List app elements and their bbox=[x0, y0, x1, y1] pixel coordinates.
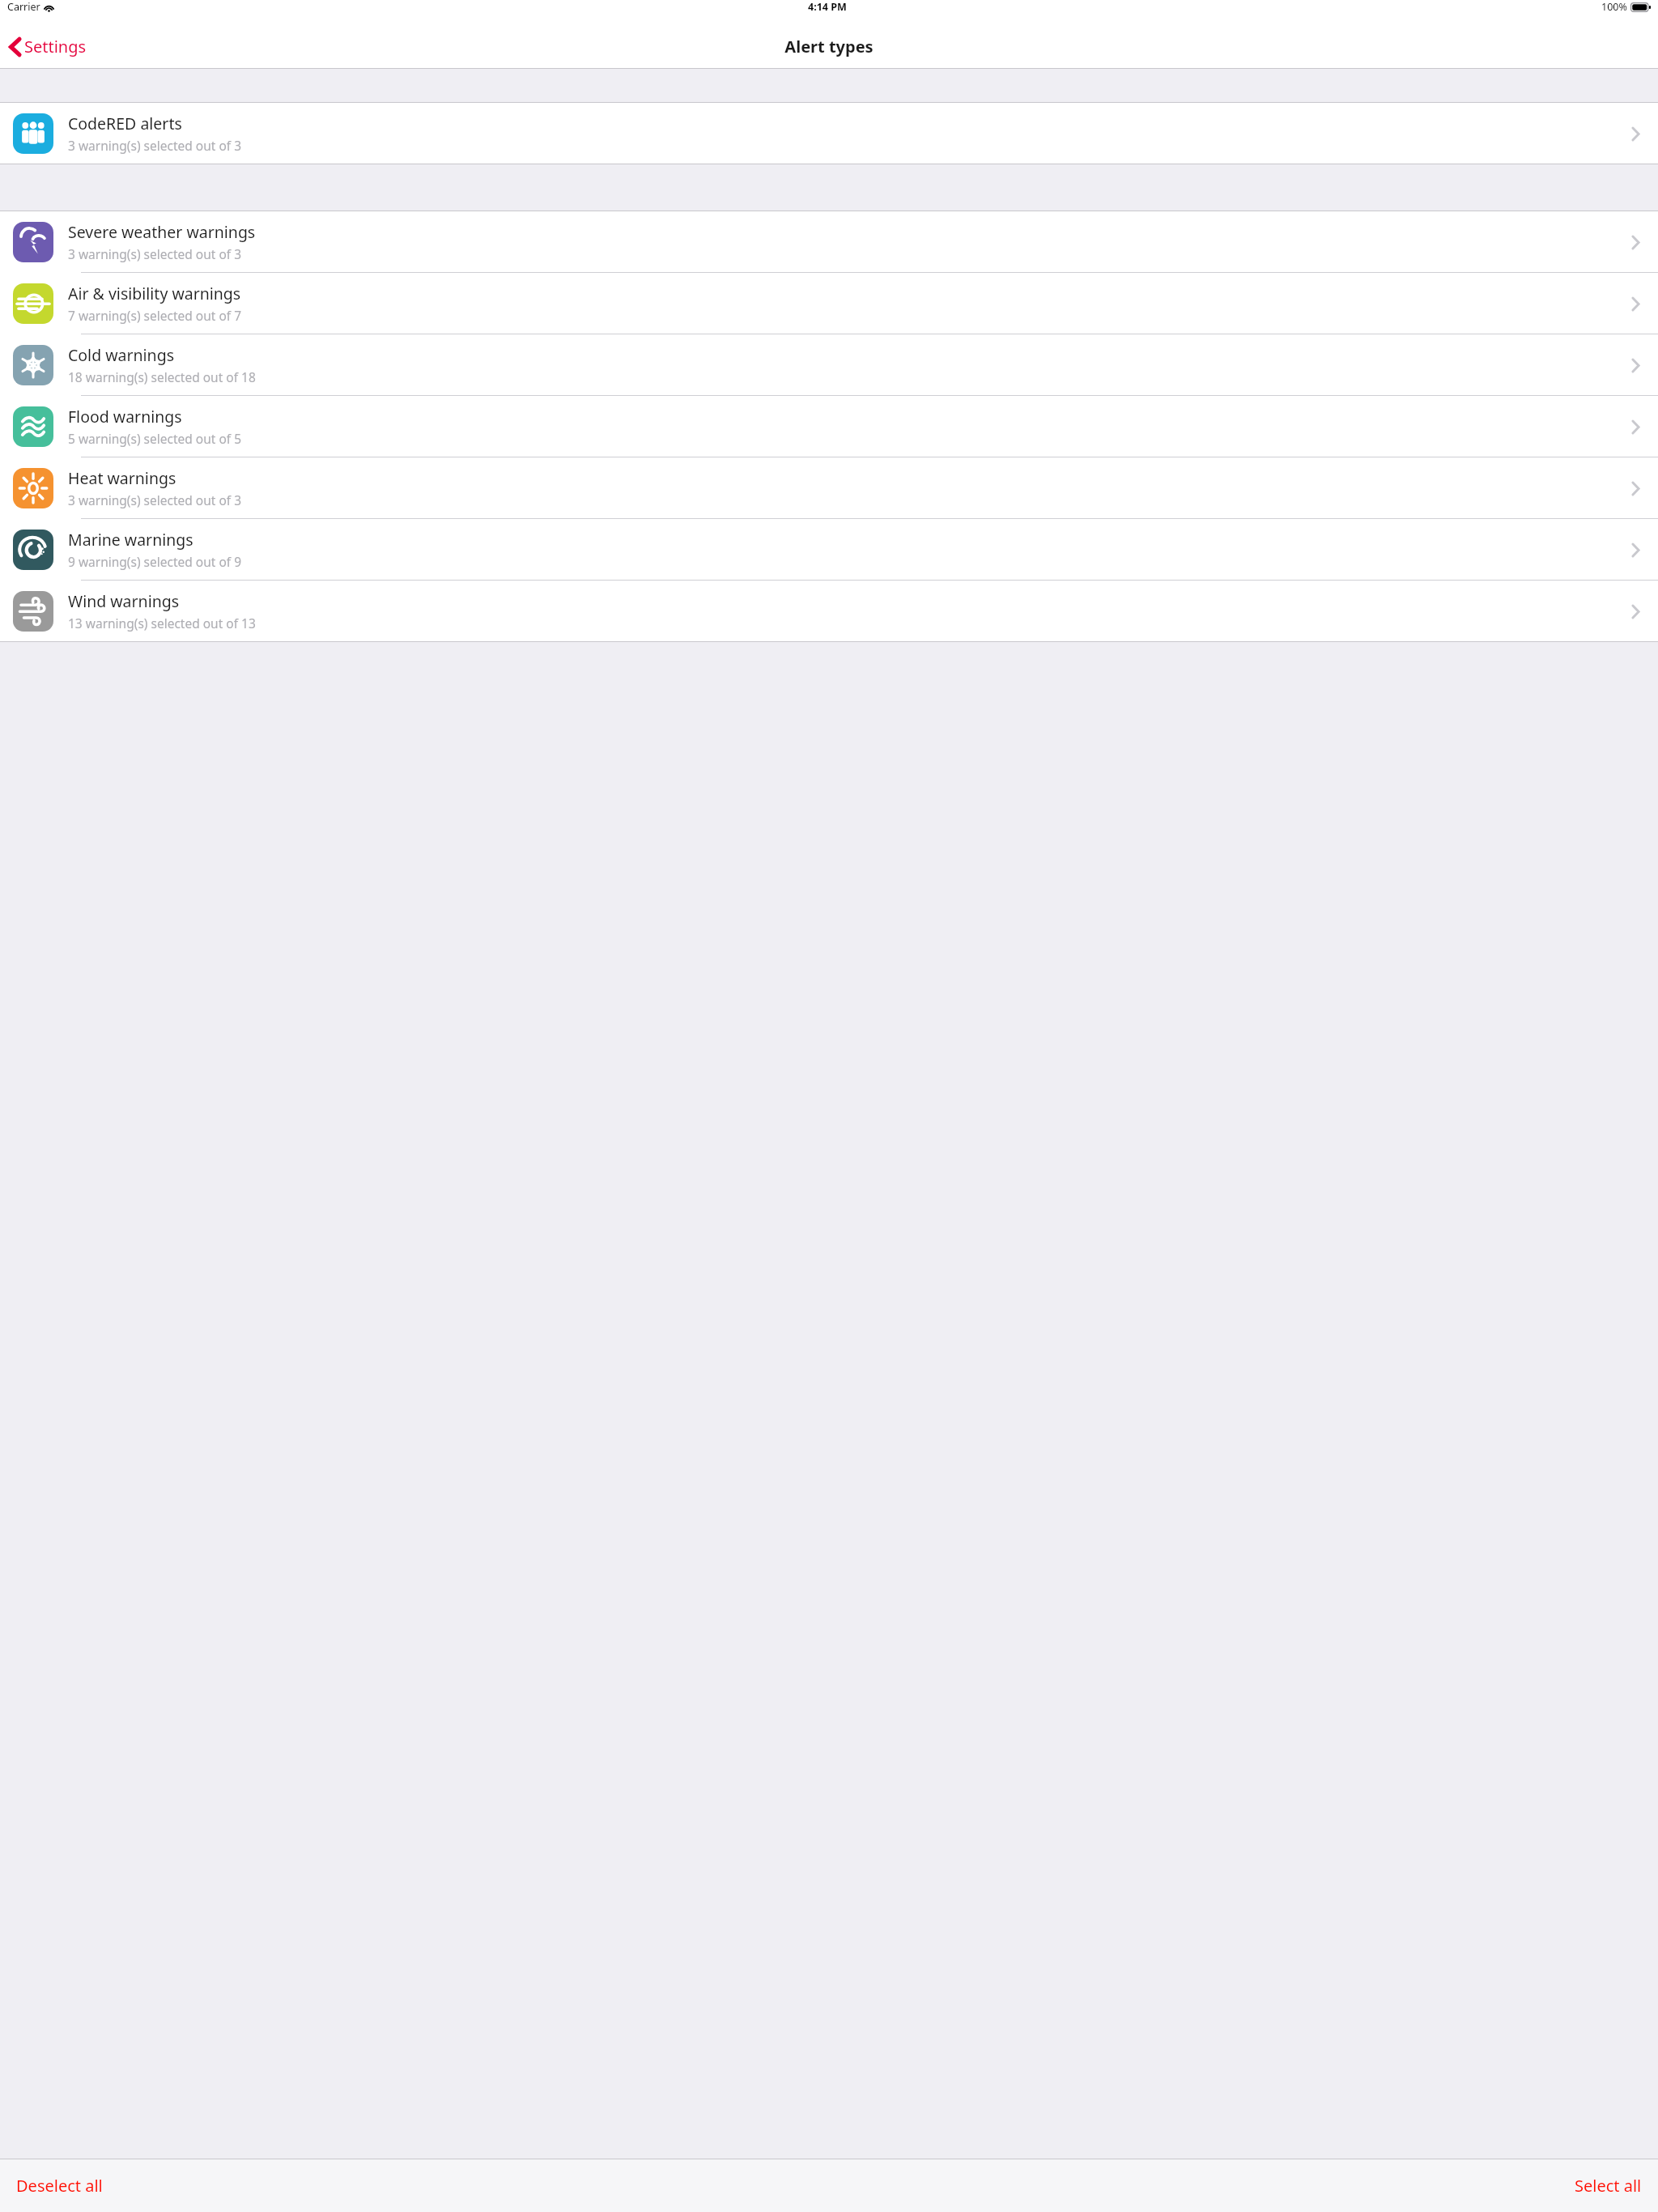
staticText: 7 warning(s) selected out of 7 bbox=[68, 307, 242, 324]
staticText: Select all bbox=[1575, 2175, 1642, 2197]
staticText: Air & visibility warnings bbox=[68, 283, 241, 304]
staticText: 9 warning(s) selected out of 9 bbox=[68, 553, 242, 570]
other: Air & visibility warnings bbox=[1624, 292, 1647, 315]
button[interactable]: Marine warnings bbox=[0, 519, 1658, 581]
other: Marine warnings bbox=[1624, 538, 1647, 561]
button[interactable]: Air & visibility warnings bbox=[0, 273, 1658, 334]
staticText: 5 warning(s) selected out of 5 bbox=[68, 430, 242, 447]
staticText: Alert types bbox=[784, 36, 874, 57]
other: Severe weather warnings bbox=[1624, 231, 1647, 253]
staticText: Heat warnings bbox=[68, 467, 176, 489]
staticText: CodeRED alerts bbox=[68, 113, 182, 134]
button[interactable]: Heat warnings bbox=[0, 457, 1658, 519]
other: Flood warnings bbox=[1624, 415, 1647, 438]
button[interactable]: Severe weather warnings bbox=[0, 211, 1658, 273]
staticText: 100% bbox=[1601, 0, 1627, 14]
staticText: 13 warning(s) selected out of 13 bbox=[68, 615, 256, 632]
staticText: Severe weather warnings bbox=[68, 221, 256, 243]
staticText: Deselect all bbox=[16, 2175, 103, 2197]
staticText: Marine warnings bbox=[68, 529, 193, 551]
staticText: 18 warning(s) selected out of 18 bbox=[68, 368, 256, 385]
button[interactable]: CodeRED alerts bbox=[0, 103, 1658, 164]
button[interactable]: Deselect all bbox=[8, 2168, 111, 2203]
other: Wind warnings bbox=[1624, 600, 1647, 623]
button[interactable]: Flood warnings bbox=[0, 396, 1658, 457]
button[interactable]: Select all bbox=[1567, 2168, 1650, 2203]
staticText: Carrier bbox=[7, 0, 40, 14]
staticText: Cold warnings bbox=[68, 344, 175, 366]
button[interactable]: Wind warnings bbox=[0, 581, 1658, 641]
other: Cold warnings bbox=[1624, 354, 1647, 376]
staticText: 3 warning(s) selected out of 3 bbox=[68, 137, 242, 154]
other: CodeRED alerts bbox=[1624, 122, 1647, 145]
staticText: Settings bbox=[24, 36, 87, 57]
staticText: 3 warning(s) selected out of 3 bbox=[68, 245, 242, 262]
other: Heat warnings bbox=[1624, 477, 1647, 500]
staticText: Wind warnings bbox=[68, 590, 180, 612]
staticText: 3 warning(s) selected out of 3 bbox=[68, 491, 242, 508]
button[interactable]: Settings bbox=[6, 31, 90, 62]
button[interactable]: Cold warnings bbox=[0, 334, 1658, 396]
staticText: 4:14 PM bbox=[808, 0, 847, 14]
staticText: Flood warnings bbox=[68, 406, 182, 428]
